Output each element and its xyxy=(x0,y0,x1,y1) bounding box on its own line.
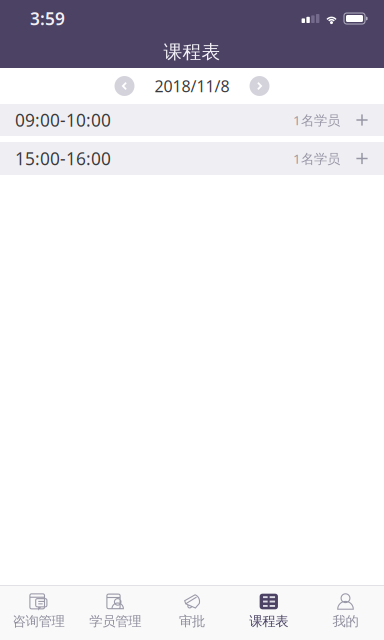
button[interactable]: 课程表 xyxy=(230,586,307,640)
staticText: 咨询管理 xyxy=(12,613,64,629)
button[interactable]: 我的 xyxy=(307,586,384,640)
button[interactable]: 学员管理 xyxy=(77,586,154,640)
staticText: 09:00-10:00 xyxy=(15,108,111,131)
staticText: 15:00-16:00 xyxy=(15,147,111,170)
staticText: 学员管理 xyxy=(89,613,141,629)
staticText: 审批 xyxy=(179,613,205,629)
button[interactable]: 咨询管理 xyxy=(0,586,77,640)
button[interactable]: 09:00-10:00 xyxy=(0,104,384,136)
button[interactable]: 15:00-16:00 xyxy=(0,142,384,175)
staticText: 3:59 xyxy=(30,7,65,30)
button[interactable]: Next day xyxy=(246,73,272,99)
staticText: 1名学员 xyxy=(293,150,340,167)
staticText: 课程表 xyxy=(163,40,220,63)
button[interactable]: Previous day xyxy=(111,73,137,99)
staticText: 1名学员 xyxy=(293,111,340,129)
staticText: 2018/11/8 xyxy=(154,75,229,97)
staticText: 我的 xyxy=(333,613,359,629)
staticText: 课程表 xyxy=(249,613,288,629)
button[interactable]: 审批 xyxy=(154,586,230,640)
